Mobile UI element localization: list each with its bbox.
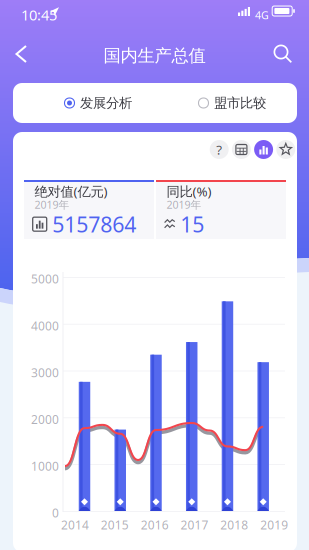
staticText: 1000 [31, 458, 59, 474]
staticText: 盟市比较 [214, 95, 266, 111]
staticText: 15 [180, 210, 204, 238]
staticText: 0 [52, 505, 59, 521]
staticText: 发展分析 [80, 95, 132, 111]
button[interactable]: Favorite [276, 140, 295, 159]
button[interactable]: Search [265, 36, 301, 72]
staticText: 2018 [220, 517, 248, 533]
staticText: ? [216, 141, 222, 158]
button[interactable]: 盟市比较 [161, 83, 303, 123]
staticText: 国内生产总值 [103, 45, 205, 66]
staticText: 2014 [61, 517, 89, 533]
staticText: 2016 [141, 517, 169, 533]
button[interactable]: Back [3, 36, 39, 72]
staticText: 同比(%) [166, 182, 211, 200]
staticText: 5157864 [52, 210, 136, 238]
staticText: 3000 [31, 365, 59, 380]
staticText: 5000 [31, 271, 59, 287]
staticText: 4000 [31, 318, 59, 334]
staticText: 2000 [31, 411, 59, 427]
staticText: 10:45 [21, 5, 57, 24]
button[interactable]: Chart view [254, 140, 273, 159]
staticText: 2019年 [166, 197, 201, 212]
button[interactable]: Table view [232, 140, 251, 159]
button[interactable]: 发展分析 [27, 83, 169, 123]
staticText: 2015 [101, 517, 129, 533]
button[interactable]: Help [210, 140, 229, 159]
staticText: 4G [255, 8, 269, 22]
staticText: 2019 [260, 517, 288, 533]
staticText: 2019年 [34, 197, 69, 212]
staticText: 2017 [180, 517, 208, 533]
staticText: 绝对值(亿元) [34, 182, 107, 200]
